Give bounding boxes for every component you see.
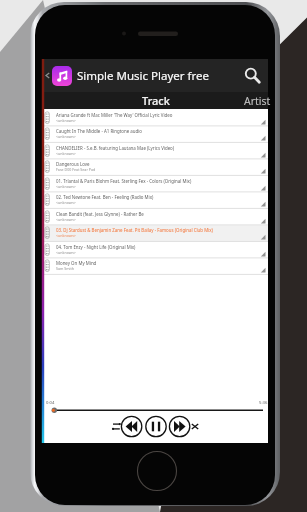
button[interactable]: 03. Dj Stardust & Benjamin Zane Feat. Pi… <box>43 225 268 242</box>
staticText: Ariana Grande ft Mac Miller 'The Way' Of… <box>56 112 173 118</box>
staticText: Artist <box>244 94 271 108</box>
staticText: 03. Dj Stardust & Benjamin Zane Feat. Pi… <box>56 227 213 233</box>
button[interactable]: CHANDELIER - S.e.B. featuring Lautana Ma… <box>43 143 268 160</box>
staticText: Dangerous Love <box>56 161 90 167</box>
staticText: 02. Ted Newtone Feat. Ben - Feeling (Rad… <box>56 194 154 200</box>
button[interactable]: Ariana Grande ft Mac Miller 'The Way' Of… <box>43 110 268 127</box>
button[interactable]: Caught In The Middle - A1 Ringtone audio <box>43 126 268 143</box>
staticText: <unknown> <box>56 217 76 222</box>
button[interactable]: Repeat <box>107 420 120 433</box>
staticText: CHANDELIER - S.e.B. featuring Lautana Ma… <box>56 145 175 151</box>
button[interactable]: Search <box>239 59 267 92</box>
staticText: <unknown> <box>56 200 76 205</box>
button[interactable]: Track <box>113 92 199 109</box>
button[interactable]: Dangerous Love <box>43 159 268 176</box>
staticText: Fase D00 Feat Sear Pad <box>56 167 96 172</box>
staticText: 5:36 <box>259 400 268 406</box>
staticText: Clean Bandit (feat. Jess Glynne) - Rathe… <box>56 211 144 217</box>
button[interactable]: Navigate up <box>43 59 52 92</box>
button[interactable]: Fast forward <box>173 416 194 437</box>
button[interactable]: 01. Trlantal & Paris Blohm Feat. Sterlin… <box>43 176 268 193</box>
staticText: <unknown> <box>56 184 76 189</box>
staticText: Simple Music Player free <box>77 68 209 84</box>
button[interactable]: Artist <box>214 92 300 109</box>
button[interactable]: Money On My Mind <box>43 258 268 275</box>
button[interactable]: 04. Tom Enzy - Night Life (Original Mix) <box>43 242 268 259</box>
staticText: <unknown> <box>56 233 76 238</box>
staticText: 04. Tom Enzy - Night Life (Original Mix) <box>56 244 136 250</box>
button[interactable]: Clean Bandit (feat. Jess Glynne) - Rathe… <box>43 209 268 226</box>
staticText: <unknown> <box>56 118 76 123</box>
staticText: <unknown> <box>56 151 76 156</box>
button[interactable]: Rewind <box>125 416 146 437</box>
staticText: Money On My Mind <box>56 260 97 266</box>
staticText: 01. Trlantal & Paris Blohm Feat. Sterlin… <box>56 178 192 184</box>
button[interactable]: Pause <box>149 416 170 437</box>
staticText: <unknown> <box>56 134 76 139</box>
staticText: Sam Smith <box>56 266 75 271</box>
staticText: Caught In The Middle - A1 Ringtone audio <box>56 128 143 134</box>
button[interactable]: 02. Ted Newtone Feat. Ben - Feeling (Rad… <box>43 192 268 209</box>
staticText: 0:04 <box>46 400 55 406</box>
staticText: <unknown> <box>56 250 76 255</box>
staticText: Track <box>142 93 170 108</box>
